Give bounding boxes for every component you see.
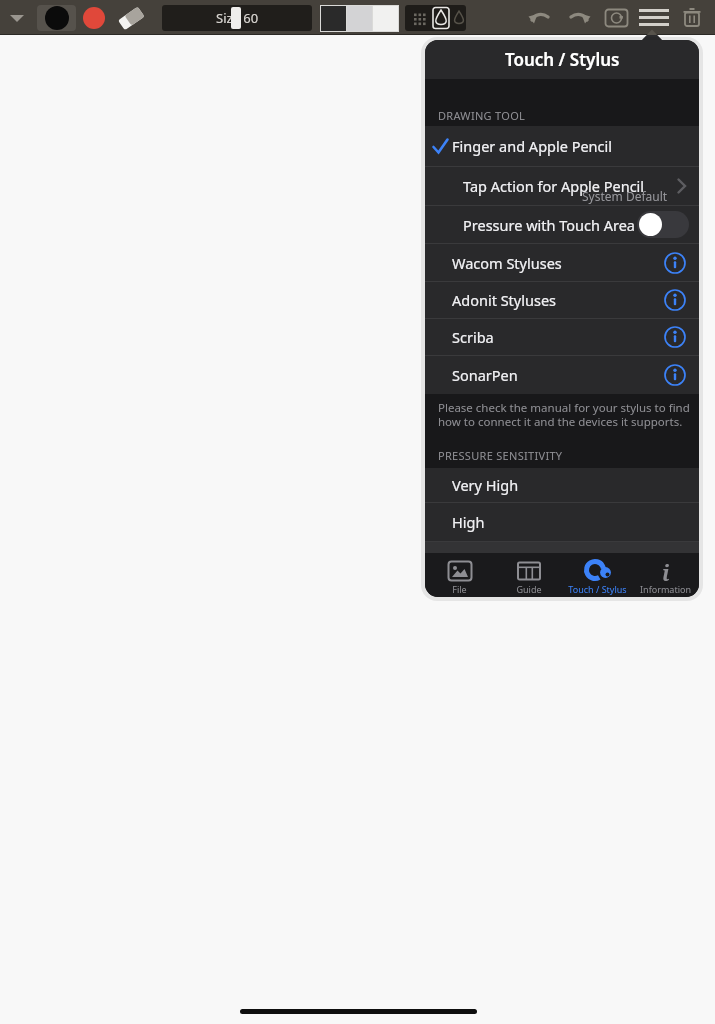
button[interactable] xyxy=(6,8,28,26)
button[interactable]: i xyxy=(632,553,699,597)
staticText: High xyxy=(452,512,485,532)
button[interactable] xyxy=(83,7,105,29)
button[interactable] xyxy=(567,6,591,30)
button[interactable]: File xyxy=(425,553,494,597)
staticText: PRESSURE SENSITIVITY xyxy=(438,448,563,463)
button[interactable] xyxy=(528,6,552,30)
button[interactable]: Wacom Styluses xyxy=(425,244,699,281)
button[interactable] xyxy=(37,5,76,31)
staticText: Touch / Stylus xyxy=(568,583,627,595)
staticText: i xyxy=(662,559,670,582)
button[interactable]: Guide xyxy=(494,553,563,597)
staticText: DRAWING TOOL xyxy=(438,108,526,123)
staticText: Pressure with Touch Area xyxy=(463,215,635,235)
staticText: Adonit Styluses xyxy=(452,290,557,310)
button[interactable] xyxy=(118,5,144,31)
button[interactable]: Very High xyxy=(425,468,699,502)
staticText: System Default xyxy=(582,188,668,204)
staticText: Size 60 xyxy=(216,9,259,27)
staticText: File xyxy=(452,583,467,595)
staticText: Tap Action for Apple Pencil xyxy=(463,176,645,196)
button[interactable]: Tap Action for Apple Pencil xyxy=(425,167,699,205)
staticText: Finger and Apple Pencil xyxy=(452,136,613,156)
button[interactable]: Touch / Stylus xyxy=(563,553,632,597)
staticText: Very High xyxy=(452,475,519,495)
staticText: Scriba xyxy=(452,327,494,347)
staticText: SonarPen xyxy=(452,365,518,385)
button[interactable]: Scriba xyxy=(425,319,699,355)
button[interactable]: Adonit Styluses xyxy=(425,282,699,318)
staticText: Information xyxy=(640,583,691,595)
staticText: Guide xyxy=(516,583,542,595)
button[interactable] xyxy=(639,5,669,31)
button[interactable]: Size 60 xyxy=(162,5,312,31)
staticText: Please check the manual for your stylus … xyxy=(438,400,690,429)
button[interactable] xyxy=(405,5,466,31)
staticText: Wacom Styluses xyxy=(452,253,562,273)
button[interactable]: Finger and Apple Pencil xyxy=(425,126,699,166)
button[interactable] xyxy=(320,5,399,32)
button[interactable]: High xyxy=(425,503,699,541)
staticText: Touch / Stylus xyxy=(505,48,620,71)
button[interactable]: Pressure with Touch Area xyxy=(425,206,699,243)
button[interactable] xyxy=(604,7,629,29)
button[interactable] xyxy=(681,6,703,28)
button[interactable]: SonarPen xyxy=(425,356,699,394)
